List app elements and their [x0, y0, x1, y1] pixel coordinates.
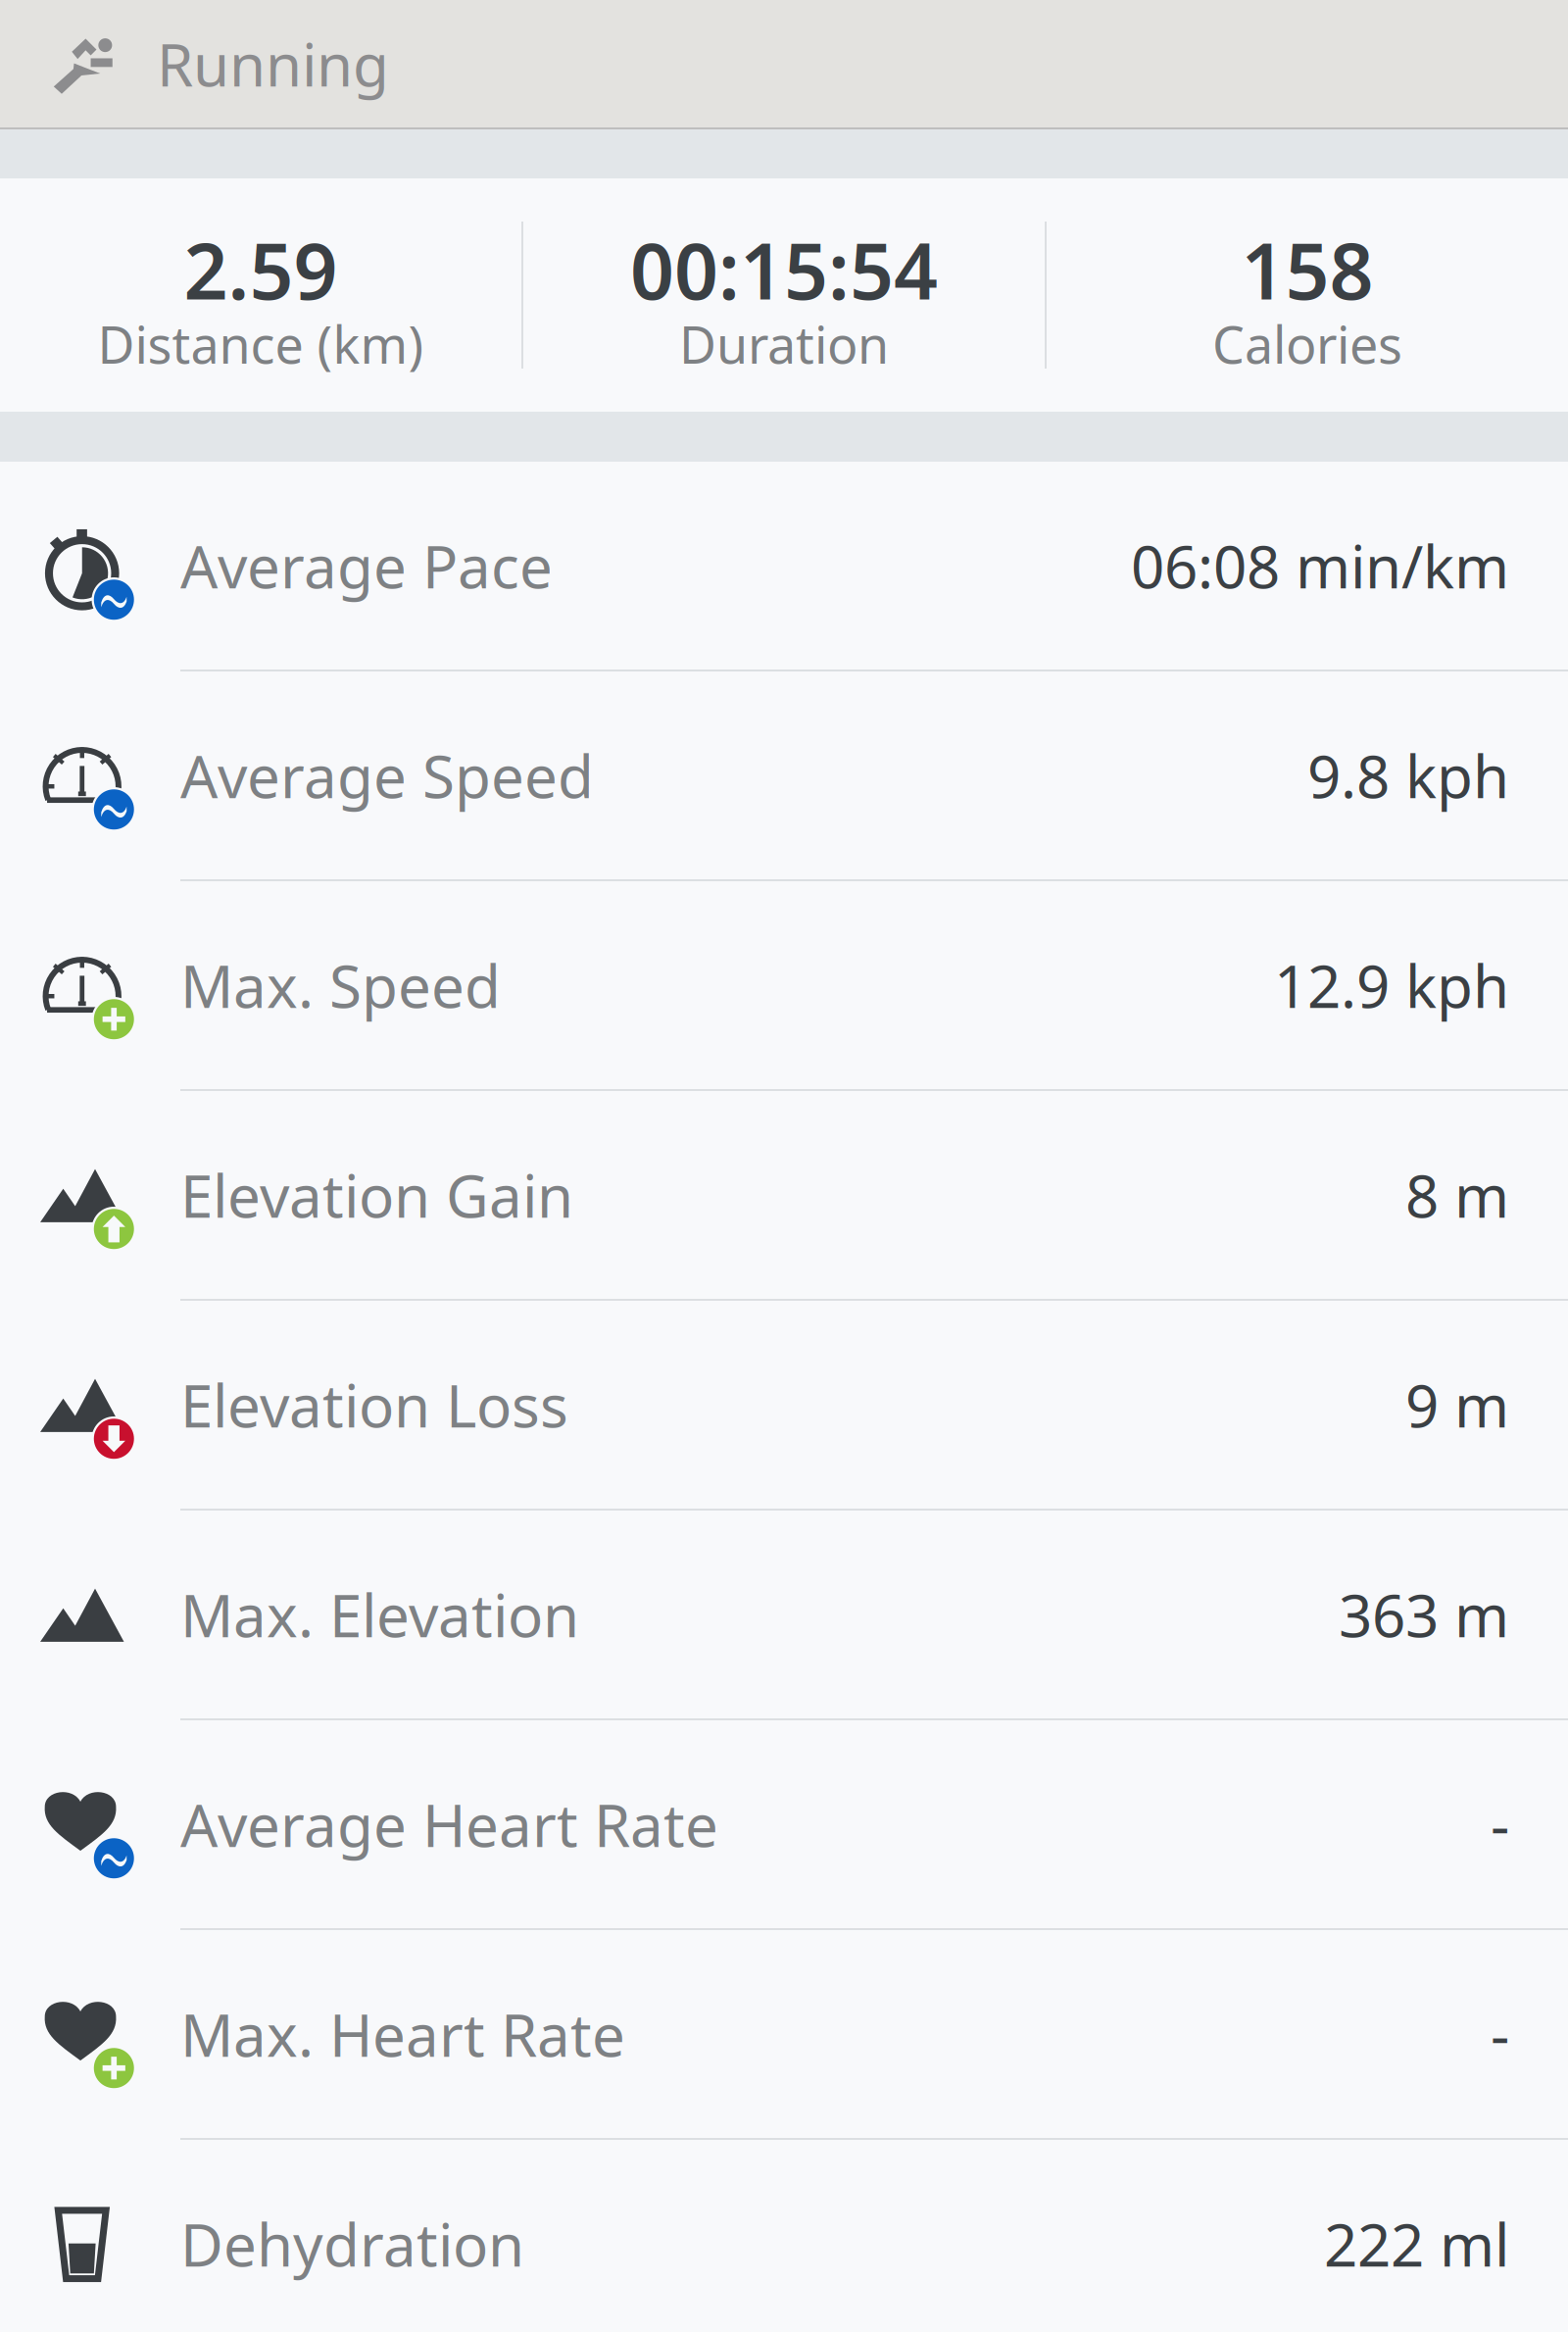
staticText: 158	[1241, 218, 1373, 321]
staticText: Elevation Loss	[180, 1366, 568, 1444]
staticText: Calories	[1212, 310, 1402, 378]
staticText: 222 ml	[1324, 2205, 1509, 2283]
button[interactable]: Max. Heart Rate	[0, 1930, 1568, 2140]
button[interactable]: Average Speed	[0, 671, 1568, 881]
staticText: Distance (km)	[98, 310, 424, 378]
staticText: 9.8 kph	[1307, 736, 1509, 814]
staticText: Running	[157, 25, 389, 103]
staticText: Max. Elevation	[180, 1575, 579, 1654]
staticText: 12.9 kph	[1274, 946, 1509, 1024]
staticText: Max. Speed	[180, 946, 501, 1024]
staticText: 06:08 min/km	[1131, 527, 1509, 605]
staticText: Average Speed	[180, 736, 594, 814]
staticText: Elevation Gain	[180, 1156, 573, 1234]
staticText: Average Heart Rate	[180, 1785, 718, 1863]
button[interactable]: Dehydration	[0, 2140, 1568, 2332]
button[interactable]: Elevation Loss	[0, 1301, 1568, 1511]
button[interactable]: Running workout	[0, 0, 1568, 127]
button[interactable]: Max. Elevation	[0, 1511, 1568, 1720]
staticText: 8 m	[1405, 1156, 1509, 1234]
button[interactable]: Max. Speed	[0, 881, 1568, 1091]
staticText: Max. Heart Rate	[180, 1995, 625, 2073]
staticText: -	[1491, 1995, 1509, 2073]
staticText: -	[1491, 1785, 1509, 1863]
staticText: Dehydration	[180, 2205, 524, 2283]
staticText: Duration	[679, 310, 889, 378]
button[interactable]: Average Heart Rate	[0, 1720, 1568, 1930]
staticText: 00:15:54	[630, 218, 938, 321]
button[interactable]: Average Pace	[0, 462, 1568, 671]
staticText: 363 m	[1339, 1575, 1509, 1654]
staticText: 2.59	[184, 218, 338, 321]
button[interactable]: Elevation Gain	[0, 1091, 1568, 1301]
staticText: Average Pace	[180, 527, 553, 605]
staticText: 9 m	[1405, 1366, 1509, 1444]
